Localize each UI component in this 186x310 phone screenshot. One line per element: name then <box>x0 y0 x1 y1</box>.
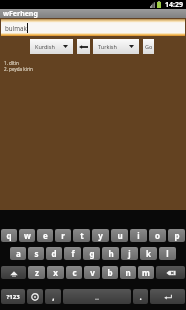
staticText: a <box>16 248 21 259</box>
button[interactable]: v <box>84 266 100 279</box>
button[interactable]: s <box>28 247 44 260</box>
staticText: t <box>80 230 84 241</box>
button[interactable]: p <box>168 229 185 242</box>
button[interactable]: Go <box>143 39 154 54</box>
staticText: z <box>35 267 39 278</box>
button[interactable]: ?123 <box>1 289 25 304</box>
button[interactable]: x <box>47 266 64 279</box>
button[interactable]: u <box>111 229 128 242</box>
staticText: 14:29 <box>165 0 183 9</box>
button[interactable]: y <box>92 229 109 242</box>
staticText: . <box>139 291 142 302</box>
staticText: 2. peyda kirin <box>4 66 33 72</box>
button[interactable]: j <box>121 247 138 260</box>
button[interactable]: Turkish <box>93 39 139 54</box>
button[interactable]: Swap languages <box>77 39 90 54</box>
staticText: wFerheng <box>3 9 38 18</box>
button[interactable]: Settings <box>27 289 43 304</box>
staticText: i <box>137 230 140 241</box>
button[interactable]: m <box>138 266 154 279</box>
staticText: k <box>146 248 151 259</box>
button[interactable]: , <box>45 289 61 304</box>
staticText: v <box>90 267 95 278</box>
staticText: x <box>53 267 58 278</box>
button[interactable]: k <box>140 247 157 260</box>
staticText: , <box>52 291 55 302</box>
staticText: p <box>174 230 180 241</box>
staticText: n <box>125 267 131 278</box>
button[interactable]: w <box>19 229 35 242</box>
button[interactable]: z <box>28 266 45 279</box>
button[interactable]: c <box>66 266 82 279</box>
button[interactable]: g <box>83 247 100 260</box>
staticText: y <box>98 230 103 241</box>
staticText: d <box>51 248 57 259</box>
staticText: o <box>155 230 160 241</box>
staticText: f <box>71 248 75 259</box>
staticText: r <box>61 230 65 241</box>
button[interactable]: b <box>102 266 118 279</box>
button[interactable]: r <box>55 229 71 242</box>
button[interactable]: o <box>149 229 166 242</box>
button[interactable]: e <box>37 229 53 242</box>
staticText: m <box>142 267 150 278</box>
staticText: Turkish <box>98 43 117 50</box>
staticText: c <box>72 267 77 278</box>
staticText: b <box>107 267 113 278</box>
button[interactable]: Enter <box>150 289 185 304</box>
button[interactable]: . <box>133 289 148 304</box>
button[interactable]: q <box>1 229 17 242</box>
button[interactable]: f <box>64 247 81 260</box>
staticText: l <box>166 248 169 259</box>
staticText: s <box>34 248 39 259</box>
staticText: ?123 <box>6 293 20 301</box>
button[interactable]: h <box>102 247 119 260</box>
button[interactable]: bulmak <box>1 19 185 36</box>
staticText: bulmak <box>5 24 27 32</box>
staticText: g <box>89 248 95 259</box>
staticText: Go <box>145 43 153 50</box>
staticText: Kurdish <box>35 43 55 50</box>
button[interactable]: Kurdish <box>30 39 73 54</box>
staticText: w <box>24 230 31 241</box>
staticText: q <box>6 230 12 241</box>
staticText: e <box>43 230 48 241</box>
button[interactable]: n <box>120 266 136 279</box>
staticText: 1. dîtin <box>4 60 19 66</box>
staticText: h <box>108 248 114 259</box>
button[interactable]: Shift <box>1 266 26 279</box>
button[interactable]: Space <box>63 289 131 304</box>
button[interactable]: Backspace <box>156 266 185 279</box>
button[interactable]: i <box>130 229 147 242</box>
staticText: u <box>117 230 123 241</box>
button[interactable]: t <box>73 229 90 242</box>
button[interactable]: d <box>46 247 62 260</box>
staticText: j <box>128 248 131 259</box>
button[interactable]: a <box>10 247 26 260</box>
button[interactable]: l <box>159 247 176 260</box>
